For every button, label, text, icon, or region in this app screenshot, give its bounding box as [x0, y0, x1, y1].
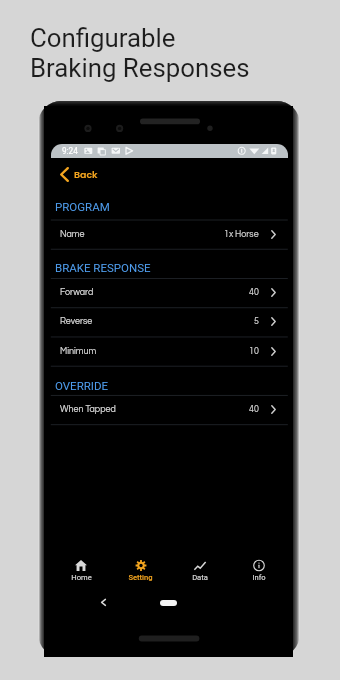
staticText: Reverse — [60, 317, 93, 326]
staticText: BRAKE RESPONSE — [55, 261, 151, 274]
staticText: Configurable — [30, 23, 176, 53]
staticText: Home — [71, 573, 92, 582]
staticText: Info — [252, 573, 266, 582]
button[interactable]: Home — [51, 555, 111, 589]
staticText: Data — [192, 573, 208, 582]
staticText: 9:24 — [62, 146, 78, 156]
staticText: 40 — [249, 405, 259, 414]
button[interactable]: Back — [44, 158, 293, 191]
staticText: Forward — [60, 288, 94, 297]
staticText: 5 — [254, 317, 259, 326]
staticText: PROGRAM — [55, 200, 110, 213]
staticText: 40 — [249, 288, 259, 297]
staticText: Minimum — [60, 347, 97, 356]
staticText: OVERRIDE — [55, 379, 109, 392]
staticText: Name — [60, 230, 85, 239]
staticText: Setting — [128, 573, 153, 582]
button[interactable]: Home — [160, 600, 177, 606]
button[interactable]: Data — [170, 555, 229, 589]
button[interactable]: Back — [100, 595, 114, 609]
button[interactable]: Info — [229, 555, 288, 589]
staticText: 1x Horse — [224, 230, 259, 239]
staticText: Braking Responses — [30, 53, 250, 83]
button[interactable]: Reverse — [44, 307, 293, 336]
staticText: 10 — [249, 347, 259, 356]
button[interactable]: When Tapped — [44, 395, 293, 424]
staticText: Back — [74, 168, 98, 181]
button[interactable]: Name — [44, 220, 293, 249]
staticText: When Tapped — [60, 405, 116, 414]
button[interactable]: Minimum — [44, 337, 293, 366]
button[interactable]: Forward — [44, 278, 293, 307]
button[interactable]: Setting — [111, 555, 170, 589]
